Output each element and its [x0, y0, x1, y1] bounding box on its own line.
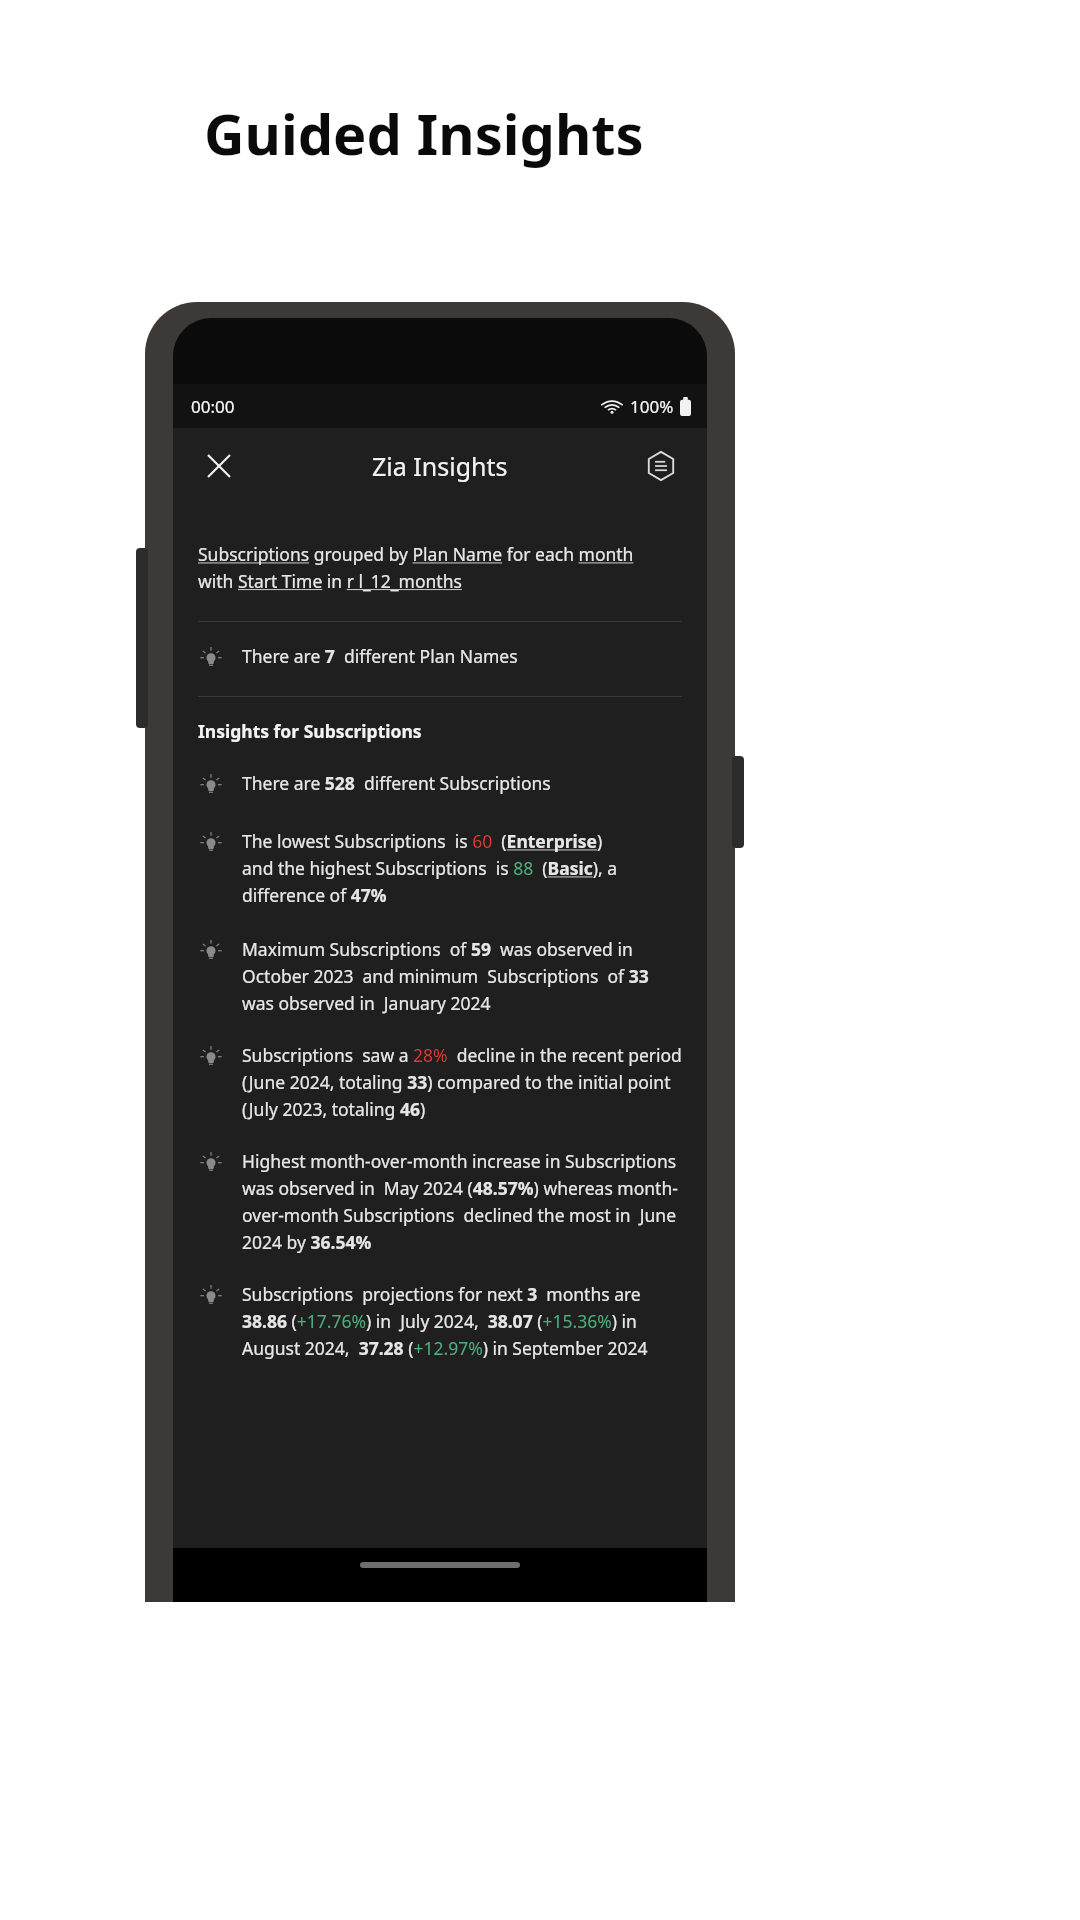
staticText: Insights for Subscriptions — [198, 719, 422, 743]
staticText: Zia Insights — [372, 449, 508, 483]
button[interactable]: Menu — [639, 444, 683, 488]
staticText: Guided Insights — [204, 95, 644, 171]
staticText: The lowest Subscriptions is 60 (Enterpri… — [242, 829, 618, 907]
staticText: 00:00 — [191, 395, 235, 418]
staticText: Highest month-over-month increase in Sub… — [242, 1149, 682, 1254]
button[interactable]: Maximum Subscriptions of 59 was observed… — [198, 937, 682, 1015]
staticText: Maximum Subscriptions of 59 was observed… — [242, 937, 682, 1015]
button[interactable]: There are 528 different Subscriptions — [198, 771, 682, 799]
staticText: 100% — [630, 395, 674, 418]
staticText: There are 7 different Plan Names — [242, 644, 518, 668]
button[interactable]: Subscriptions projections for next 3 mon… — [198, 1282, 682, 1360]
staticText: There are 528 different Subscriptions — [242, 771, 551, 795]
button[interactable]: There are 7 different Plan Names — [198, 644, 682, 672]
staticText: Subscriptions grouped by Plan Name for e… — [198, 542, 634, 593]
button[interactable]: Close — [197, 444, 241, 488]
button[interactable]: Subscriptions saw a 28% decline in the r… — [198, 1043, 682, 1121]
staticText: Subscriptions projections for next 3 mon… — [242, 1282, 682, 1360]
button[interactable]: Highest month-over-month increase in Sub… — [198, 1149, 682, 1254]
staticText: Subscriptions saw a 28% decline in the r… — [242, 1043, 682, 1121]
button[interactable]: The lowest Subscriptions is 60 (Enterpri… — [198, 829, 682, 907]
